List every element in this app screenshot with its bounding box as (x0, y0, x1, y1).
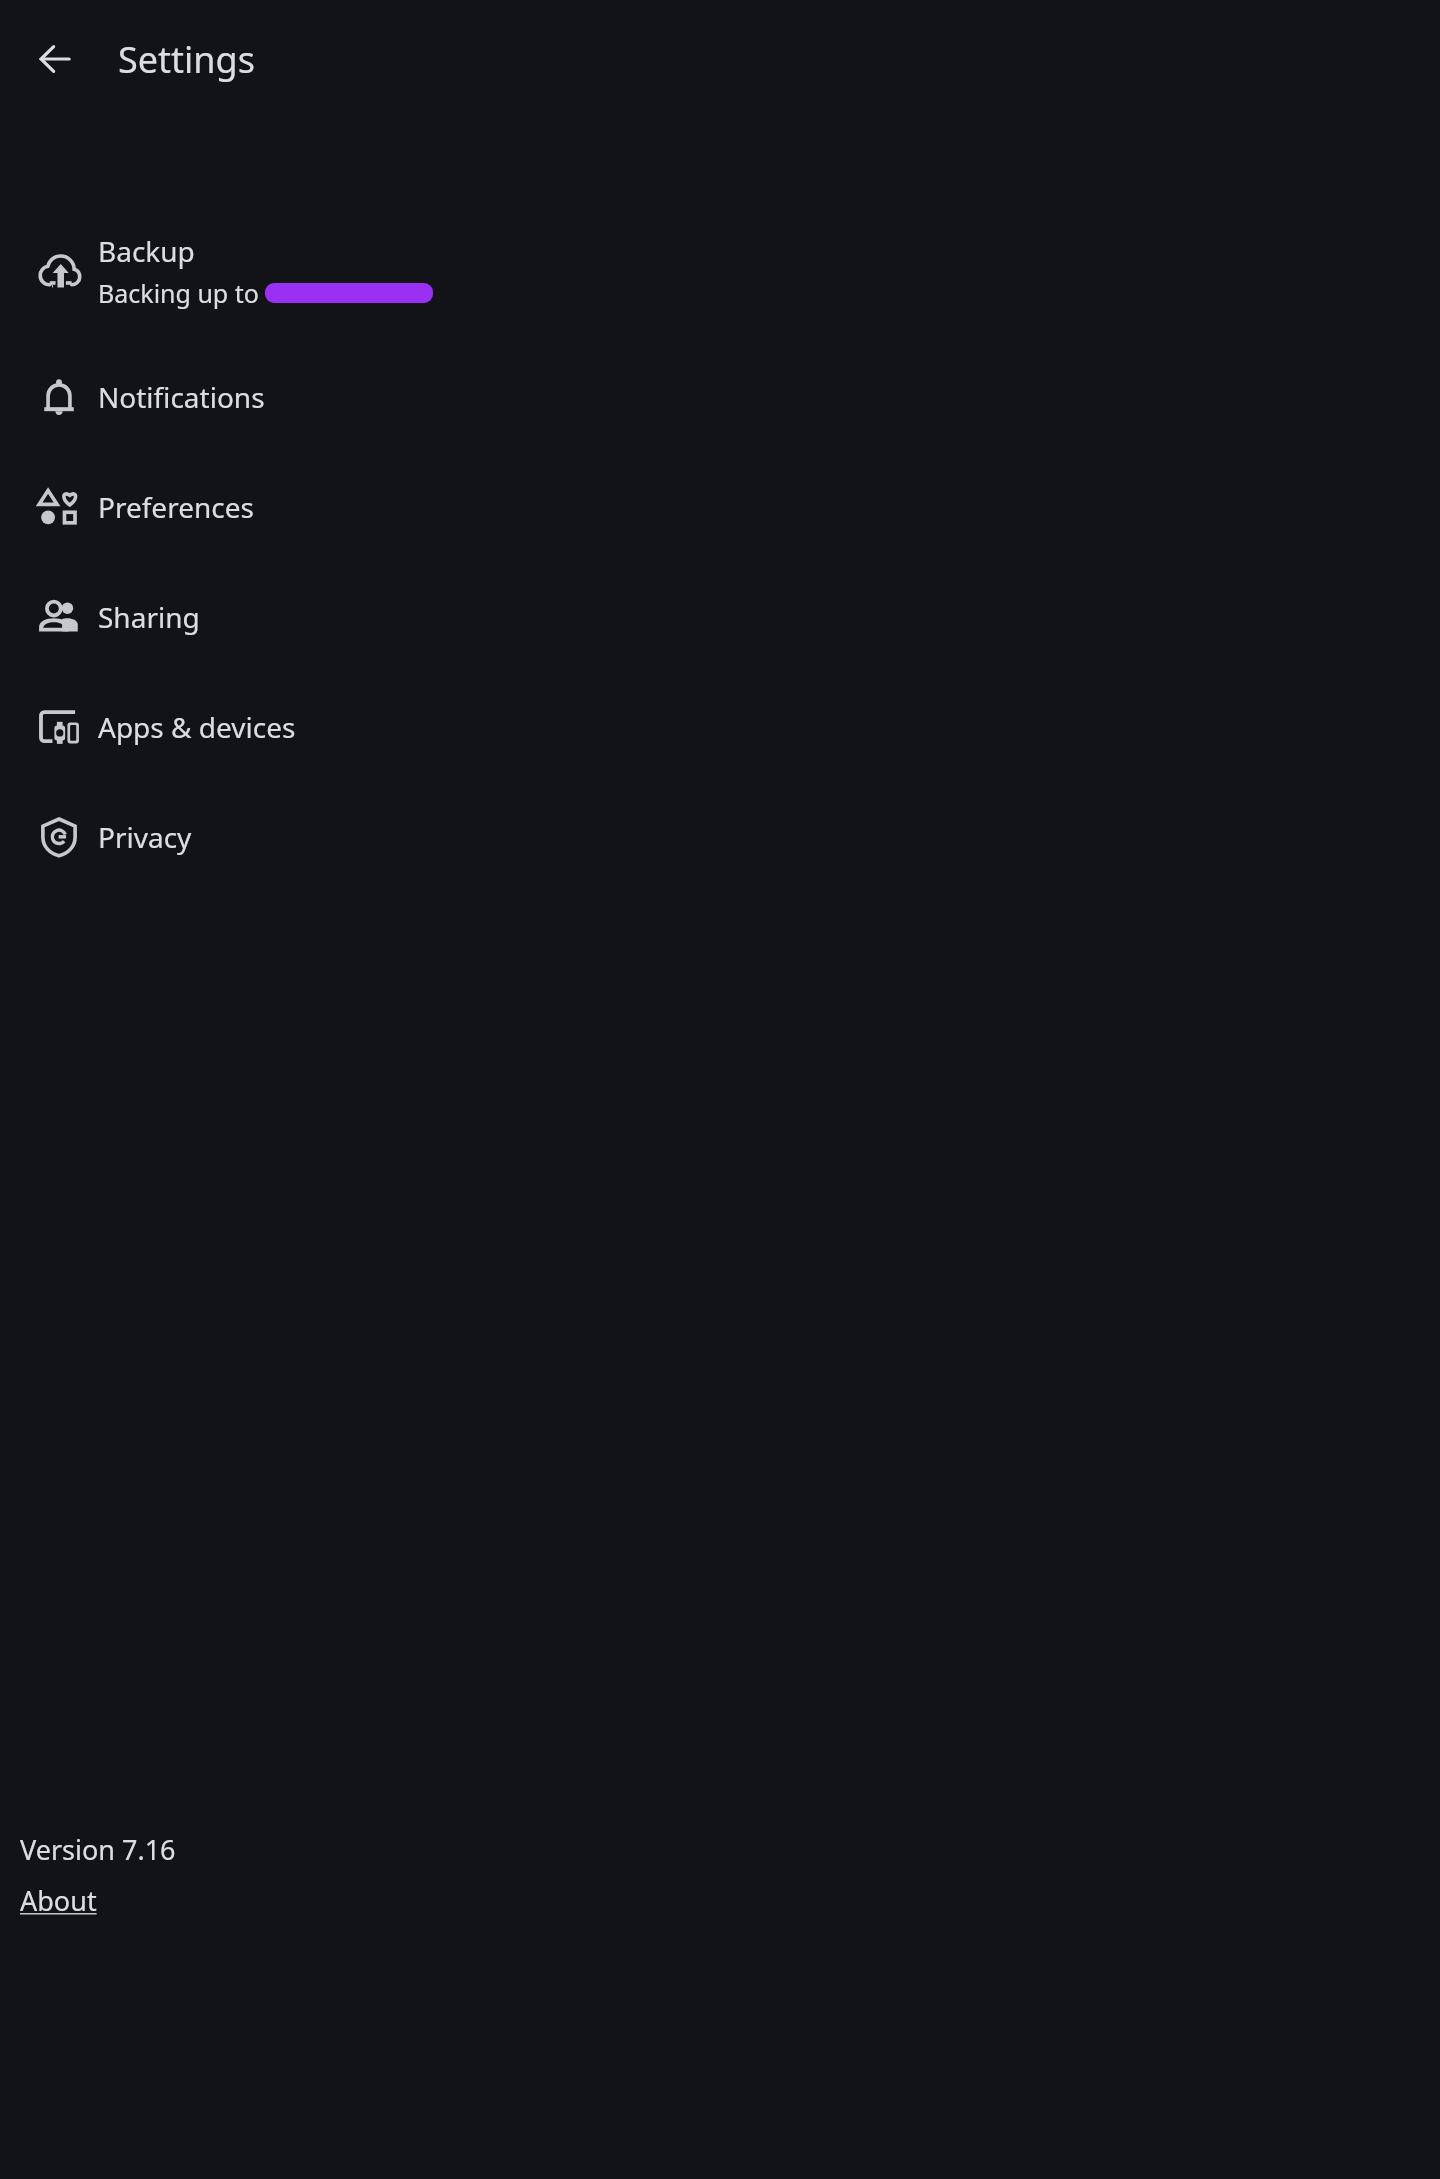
button[interactable]: Privacy (0, 800, 1440, 874)
staticText: About (20, 1882, 97, 1919)
staticText: Version 7.16 (20, 1831, 176, 1868)
button[interactable]: Notifications (0, 360, 1440, 434)
button[interactable]: Apps & devices (0, 690, 1440, 764)
staticText: Privacy (98, 818, 192, 856)
staticText: Settings (118, 35, 255, 84)
staticText: Sharing (98, 598, 200, 636)
staticText: Notifications (98, 378, 265, 416)
button[interactable]: Sharing (0, 580, 1440, 654)
staticText: Apps & devices (98, 708, 296, 746)
staticText: Backing up to (98, 276, 259, 310)
button[interactable]: Preferences (0, 470, 1440, 544)
button[interactable]: Backup (0, 218, 1440, 324)
staticText: Backup (98, 232, 195, 270)
staticText: Preferences (98, 488, 254, 526)
button[interactable]: About (20, 1882, 97, 1919)
button[interactable]: Back (14, 18, 96, 100)
